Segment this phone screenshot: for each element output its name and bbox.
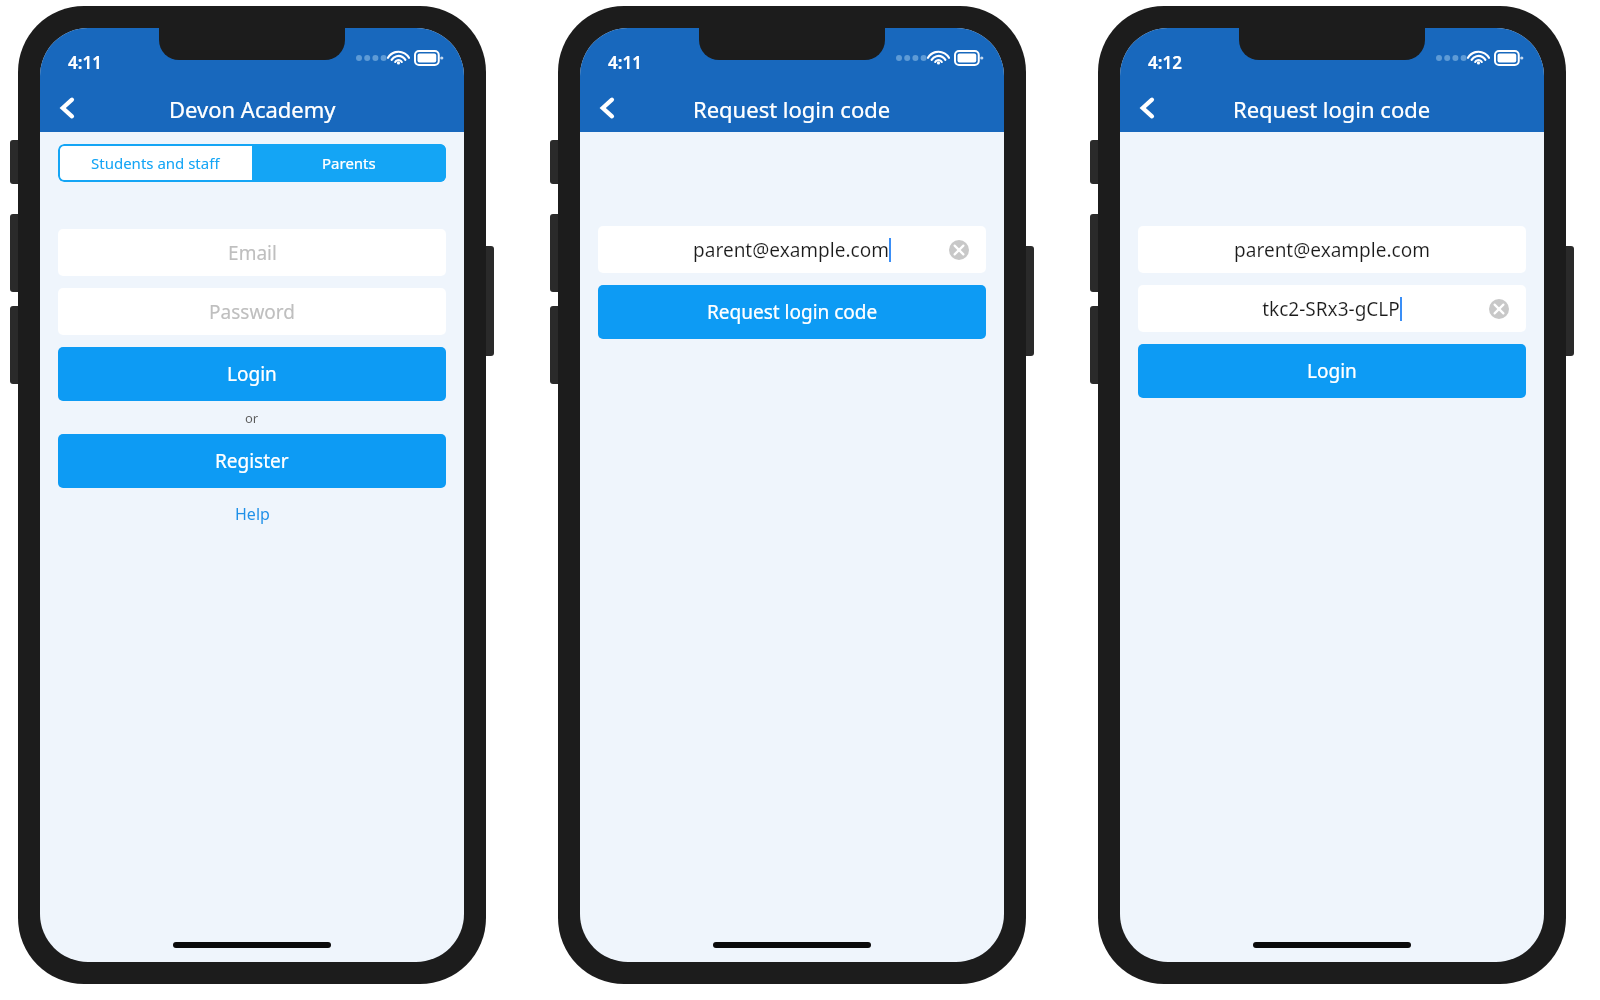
button[interactable]: tkc2-SRx3-gCLP (1138, 285, 1526, 332)
staticText: or (245, 409, 259, 427)
button[interactable]: parent@example.com (1138, 226, 1526, 273)
staticText: Password (209, 299, 295, 325)
staticText: Request login code (1233, 94, 1431, 124)
button[interactable]: Request login code (598, 285, 986, 339)
staticText: Login (227, 361, 277, 387)
button[interactable]: Email (58, 229, 446, 276)
button[interactable]: parent@example.com (598, 226, 986, 273)
staticText: Parents (322, 153, 376, 173)
staticText: parent@example.com (1234, 237, 1430, 263)
button[interactable]: Back (46, 86, 90, 130)
button[interactable]: Help (225, 501, 280, 527)
button[interactable]: Back (1126, 86, 1170, 130)
button[interactable]: Login (58, 347, 446, 401)
staticText: 4:12 (1148, 51, 1182, 74)
button[interactable]: Parents (252, 144, 446, 182)
button[interactable]: Back (586, 86, 630, 130)
staticText: 4:11 (68, 51, 102, 74)
staticText: Help (235, 503, 270, 525)
button[interactable]: Students and staff (58, 144, 252, 182)
button[interactable]: Password (58, 288, 446, 335)
staticText: Register (215, 448, 289, 474)
staticText: parent@example.com (693, 237, 889, 263)
button[interactable]: Clear text (946, 237, 972, 263)
staticText: Email (228, 240, 277, 266)
staticText: Request login code (707, 299, 878, 325)
button[interactable]: Login (1138, 344, 1526, 398)
staticText: Devon Academy (169, 94, 336, 124)
staticText: Students and staff (91, 153, 220, 173)
button[interactable]: Clear text (1486, 296, 1512, 322)
staticText: Login (1307, 358, 1357, 384)
staticText: tkc2-SRx3-gCLP (1262, 296, 1400, 322)
staticText: 4:11 (608, 51, 642, 74)
staticText: Request login code (693, 94, 891, 124)
button[interactable]: Register (58, 434, 446, 488)
